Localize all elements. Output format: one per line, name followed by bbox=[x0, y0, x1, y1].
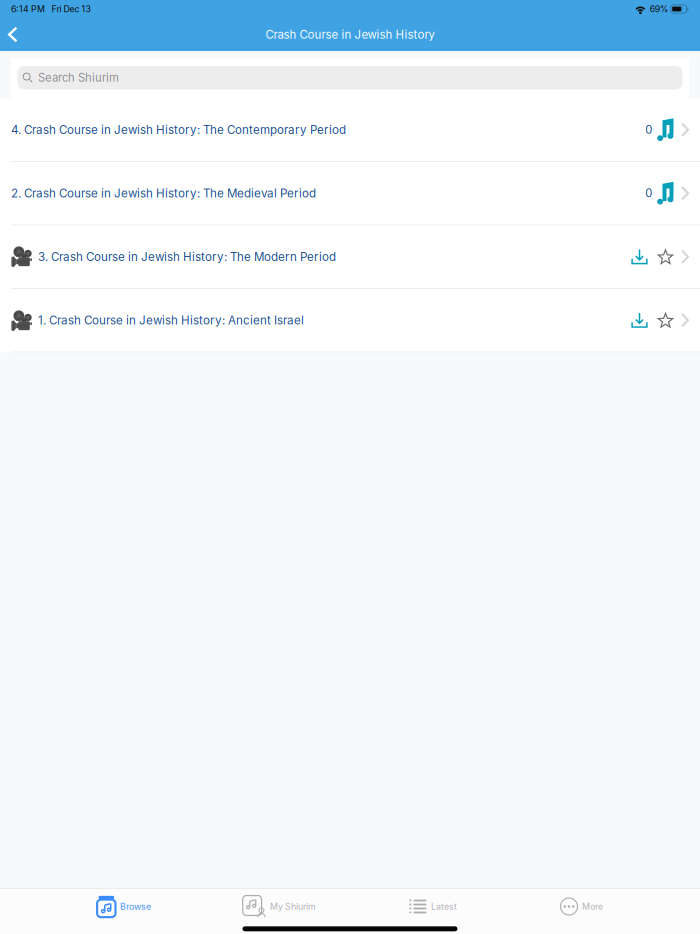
staticText: 1. Crash Course in Jewish History: Ancie… bbox=[38, 313, 304, 327]
staticText: Latest bbox=[431, 901, 457, 912]
staticText: More bbox=[582, 901, 603, 912]
button[interactable]: Latest bbox=[406, 890, 460, 923]
button[interactable]: 4. Crash Course in Jewish History: The C… bbox=[0, 98, 700, 161]
button[interactable]: Back bbox=[4, 20, 28, 48]
button[interactable]: More bbox=[557, 890, 606, 923]
staticText: Browse bbox=[120, 901, 151, 912]
button[interactable]: Browse bbox=[94, 890, 154, 923]
staticText: Search Shiurim bbox=[38, 71, 119, 85]
button[interactable]: My Shiurim bbox=[240, 890, 319, 923]
staticText: 6:14 PM bbox=[11, 4, 45, 14]
button[interactable]: 🎥 bbox=[0, 225, 700, 288]
staticText: 69% bbox=[650, 4, 669, 14]
staticText: 0 bbox=[645, 186, 652, 200]
staticText: Fri Dec 13 bbox=[51, 4, 90, 14]
button[interactable]: 2. Crash Course in Jewish History: The M… bbox=[0, 162, 700, 224]
button[interactable]: 🎥 bbox=[0, 289, 700, 351]
staticText: 3. Crash Course in Jewish History: The M… bbox=[38, 250, 336, 264]
staticText: 🎥 bbox=[9, 309, 32, 331]
staticText: My Shiurim bbox=[270, 901, 316, 912]
staticText: 0 bbox=[645, 123, 652, 137]
staticText: 4. Crash Course in Jewish History: The C… bbox=[11, 123, 346, 137]
staticText: 2. Crash Course in Jewish History: The M… bbox=[11, 186, 316, 200]
staticText: 🎥 bbox=[9, 246, 32, 268]
staticText: Crash Course in Jewish History bbox=[265, 28, 434, 41]
